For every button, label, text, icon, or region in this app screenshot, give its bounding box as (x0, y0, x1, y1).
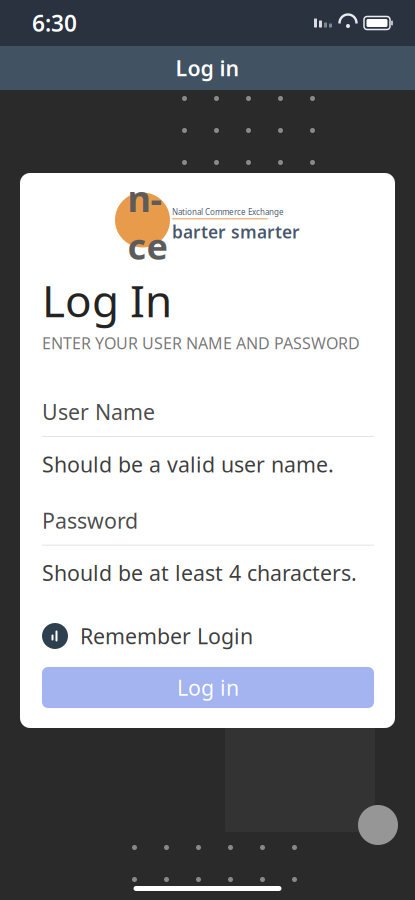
staticText: Password (42, 506, 138, 535)
staticText: Log in (175, 54, 239, 82)
button[interactable]: Log in (42, 667, 374, 708)
staticText: nce (127, 174, 167, 270)
staticText: Remember Login (80, 622, 253, 650)
staticText: Should be at least 4 characters. (42, 559, 357, 587)
staticText: 6:30 (32, 8, 77, 38)
staticText: Should be a valid user name. (42, 450, 334, 478)
button[interactable]: Remember Login (20, 619, 395, 653)
staticText: ENTER YOUR USER NAME AND PASSWORD (42, 332, 360, 354)
staticText: Log in (177, 673, 239, 702)
staticText: barter smarter (172, 220, 300, 243)
staticText: User Name (42, 398, 155, 426)
staticText: National Commerce Exchange (172, 207, 284, 217)
staticText: Log In (42, 271, 172, 329)
